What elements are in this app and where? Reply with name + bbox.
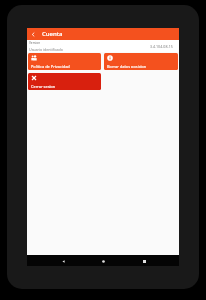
button[interactable]: Borrar datos posicion [104,53,178,70]
staticText: 3.4.104-08-15 [150,44,173,49]
button[interactable]: Politica de Privacidad [28,53,101,70]
button[interactable]: Back [58,256,68,266]
button[interactable]: Navigate up [28,29,39,40]
staticText: Version [29,41,41,45]
staticText: Politica de Privacidad [31,64,70,68]
staticText: Cerrar sesion [31,84,56,88]
button[interactable]: Recent apps [139,256,149,266]
button[interactable]: Cerrar sesion [28,73,101,90]
staticText: Usuario identificado [29,47,64,52]
button[interactable]: Home [98,256,108,266]
staticText: Cuenta [42,30,63,38]
staticText: Borrar datos posicion [107,64,147,68]
